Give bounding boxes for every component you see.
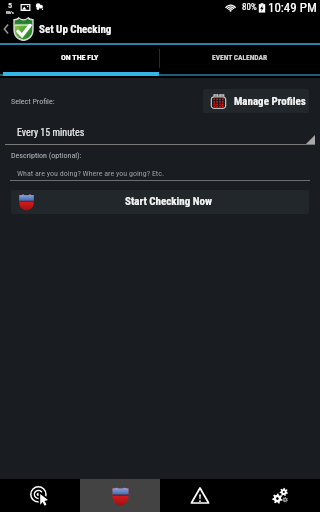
staticText: KB/s <box>6 10 14 15</box>
staticText: Select Profile: <box>11 97 55 106</box>
staticText: EVENT CALENDAR <box>212 53 268 62</box>
button[interactable]: Navigate up <box>0 15 11 43</box>
staticText: 10:49 PM <box>268 0 317 15</box>
staticText: 80% <box>242 2 257 13</box>
staticText: Description (optional): <box>11 151 82 160</box>
button[interactable]: Manage Profiles <box>203 89 309 113</box>
staticText: Every 15 minutes <box>17 127 85 139</box>
button[interactable]: EVENT CALENDAR <box>160 45 320 78</box>
staticText: Set Up Checking <box>39 23 112 36</box>
button[interactable]: Settings <box>240 479 320 512</box>
button[interactable]: Checking <box>80 479 160 512</box>
staticText: Manage Profiles <box>234 95 306 108</box>
staticText: ON THE FLY <box>61 53 99 62</box>
staticText: Start Checking Now <box>125 195 213 208</box>
staticText: 5 <box>8 1 12 10</box>
button[interactable]: Alerts <box>160 479 240 512</box>
button[interactable]: What are you doing? Where are you going?… <box>5 164 315 181</box>
staticText: What are you doing? Where are you going?… <box>17 169 165 178</box>
button[interactable]: Start Checking Now <box>11 190 309 214</box>
button[interactable]: Live tracking <box>0 479 80 512</box>
button[interactable]: ON THE FLY <box>0 45 159 78</box>
button[interactable]: Every 15 minutes <box>5 120 315 145</box>
